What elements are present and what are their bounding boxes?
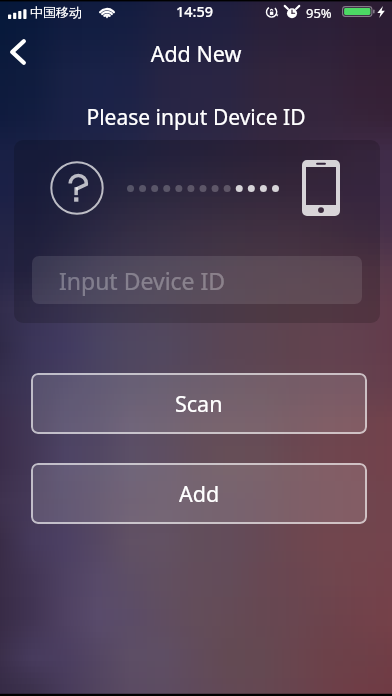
staticText: Add [179, 479, 220, 508]
staticText: 中国移动 [30, 4, 82, 20]
staticText: 14:59 [176, 1, 214, 21]
button[interactable]: Input Device ID [32, 256, 362, 304]
staticText: Scan [175, 389, 223, 418]
staticText: Please input Device ID [0, 103, 392, 132]
staticText: Add New [0, 39, 392, 68]
button[interactable]: Help [50, 161, 104, 215]
button[interactable]: Add [31, 463, 367, 524]
staticText: 95% [306, 4, 332, 22]
staticText: Input Device ID [59, 265, 226, 296]
button[interactable]: Back [0, 30, 40, 74]
button[interactable]: Scan [31, 373, 367, 434]
